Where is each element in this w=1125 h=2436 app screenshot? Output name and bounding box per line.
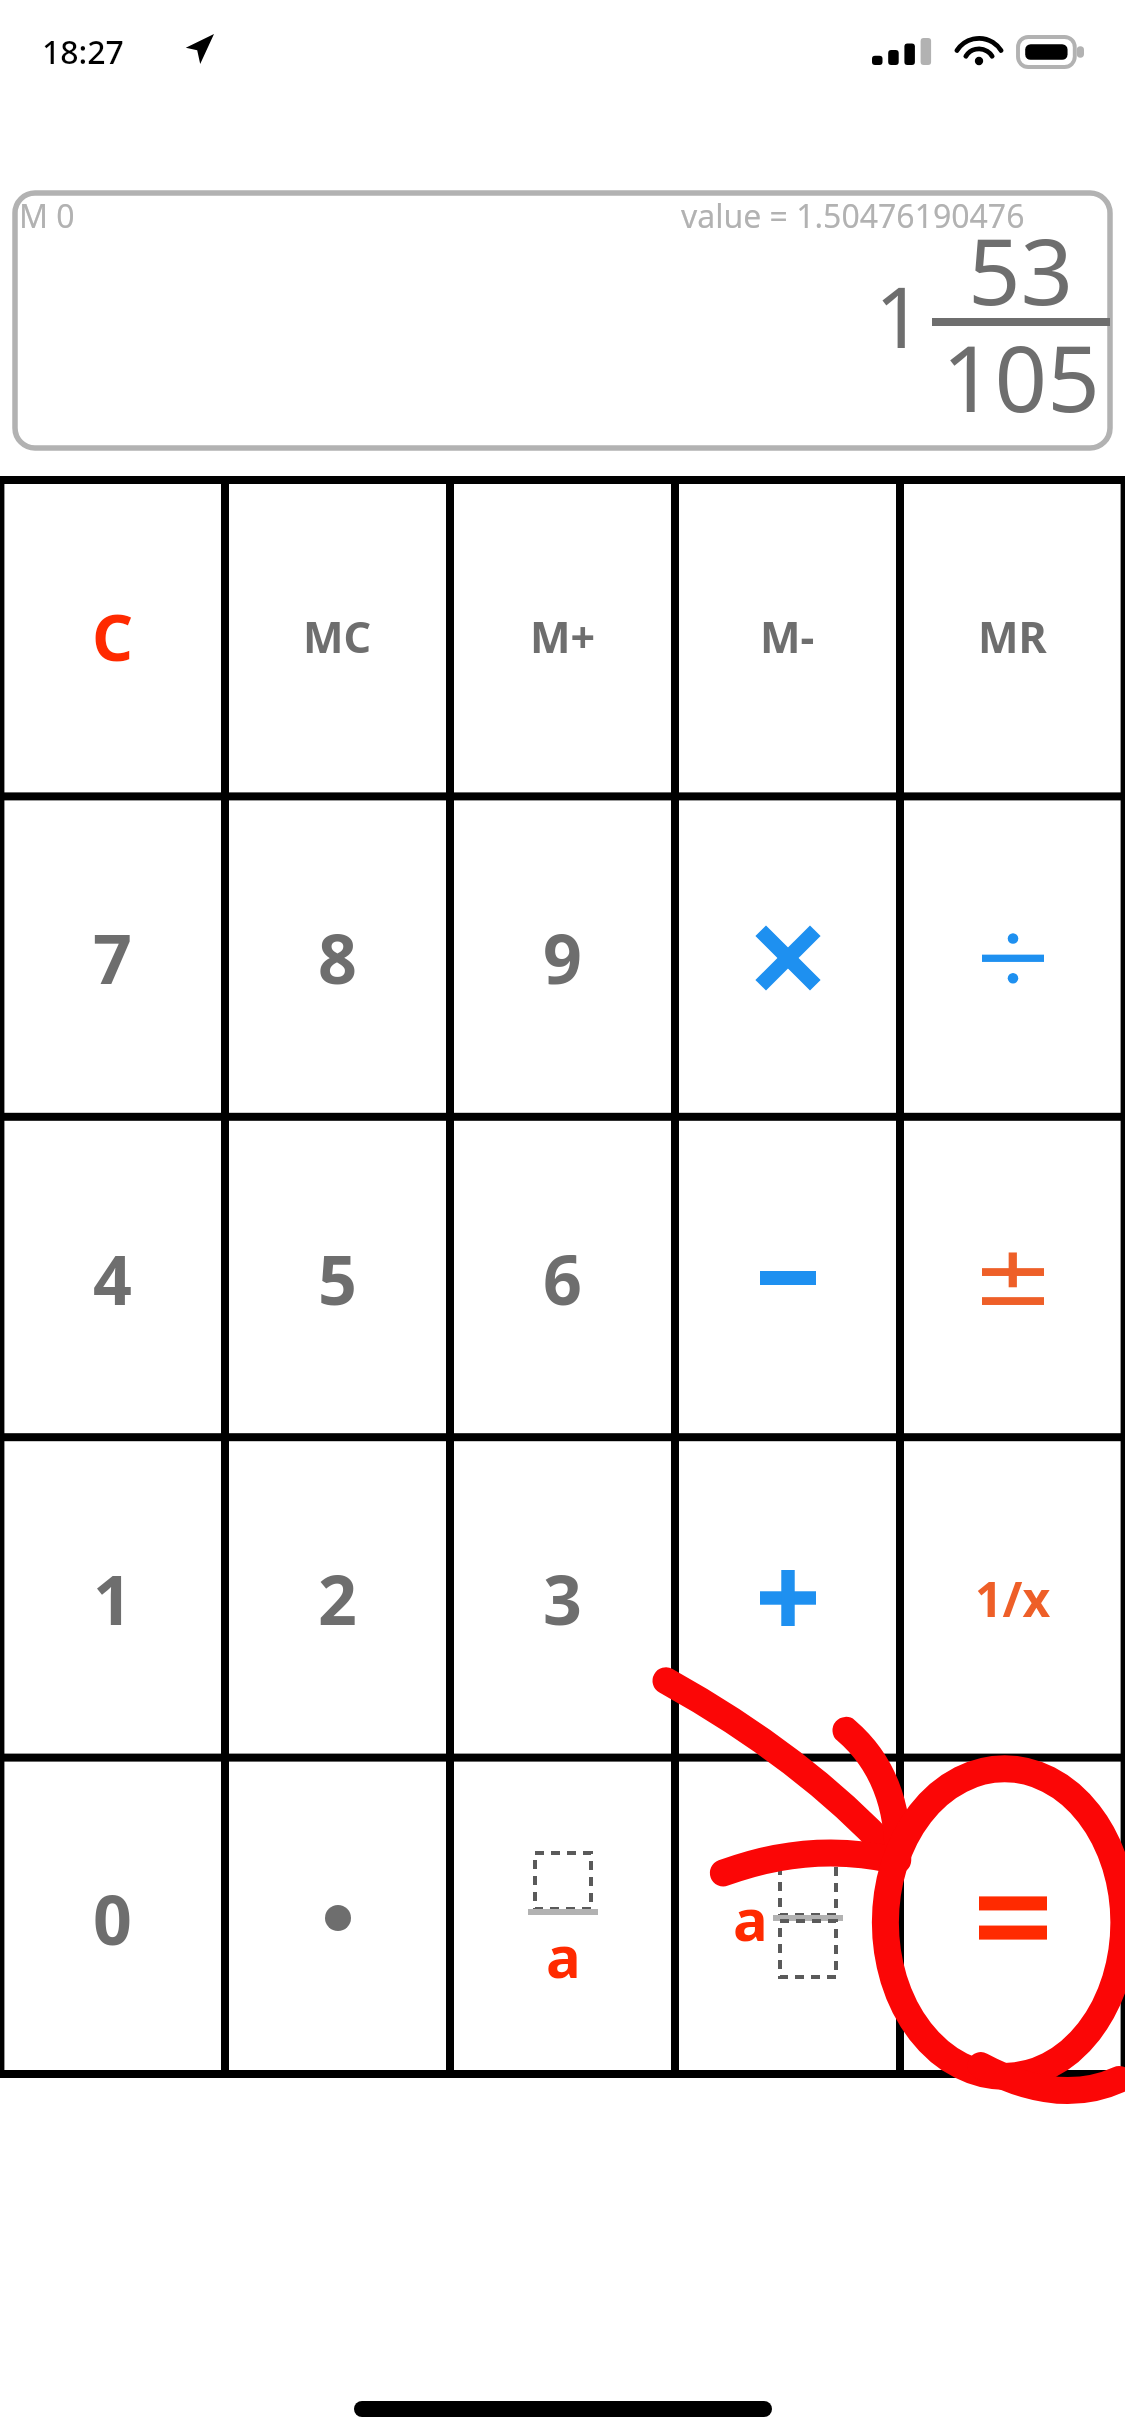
button[interactable]: Memory add: [450, 476, 675, 797]
staticText: 105: [942, 314, 1100, 436]
button[interactable]: Memory subtract: [675, 476, 900, 797]
staticText: value = 1.50476190476: [681, 194, 1025, 238]
button[interactable]: Add: [675, 1438, 900, 1758]
staticText: 8: [318, 911, 357, 1004]
button[interactable]: Clear: [0, 476, 225, 797]
button[interactable]: 5: [225, 1118, 450, 1438]
staticText: 5: [318, 1232, 357, 1325]
button[interactable]: 3: [450, 1438, 675, 1758]
button[interactable]: Decimal point: [225, 1758, 450, 2078]
staticText: 1: [93, 1552, 132, 1645]
staticText: 1/x: [975, 1566, 1051, 1631]
button[interactable]: Plus minus: [900, 1118, 1125, 1438]
button[interactable]: Divide: [900, 797, 1125, 1118]
staticText: MC: [303, 607, 372, 666]
button[interactable]: 8: [225, 797, 450, 1118]
staticText: a: [733, 1879, 768, 1958]
button[interactable]: Reciprocal: [900, 1438, 1125, 1758]
staticText: M+: [530, 607, 596, 666]
staticText: a: [546, 1916, 581, 1995]
button[interactable]: Mixed fraction: [675, 1758, 900, 2078]
button[interactable]: Memory clear: [225, 476, 450, 797]
button[interactable]: 6: [450, 1118, 675, 1438]
staticText: 2: [318, 1552, 357, 1645]
button[interactable]: 9: [450, 797, 675, 1118]
staticText: 1: [875, 258, 924, 372]
staticText: 3: [543, 1552, 582, 1645]
staticText: 18:27: [42, 30, 124, 74]
button[interactable]: 7: [0, 797, 225, 1118]
staticText: C: [92, 593, 134, 680]
staticText: 4: [93, 1232, 132, 1325]
staticText: 9: [543, 911, 582, 1004]
staticText: M 0: [19, 194, 75, 238]
staticText: M-: [760, 607, 815, 666]
staticText: 6: [543, 1232, 582, 1325]
button[interactable]: 4: [0, 1118, 225, 1438]
staticText: 0: [93, 1872, 132, 1965]
staticText: 7: [93, 911, 132, 1004]
staticText: 53: [968, 207, 1074, 332]
button[interactable]: 1: [0, 1438, 225, 1758]
button[interactable]: 2: [225, 1438, 450, 1758]
button[interactable]: Subtract: [675, 1118, 900, 1438]
button[interactable]: 0: [0, 1758, 225, 2078]
button[interactable]: Equals: [900, 1758, 1125, 2078]
button[interactable]: Fraction: [450, 1758, 675, 2078]
staticText: MR: [978, 607, 1047, 666]
button[interactable]: Memory recall: [900, 476, 1125, 797]
button[interactable]: Multiply: [675, 797, 900, 1118]
